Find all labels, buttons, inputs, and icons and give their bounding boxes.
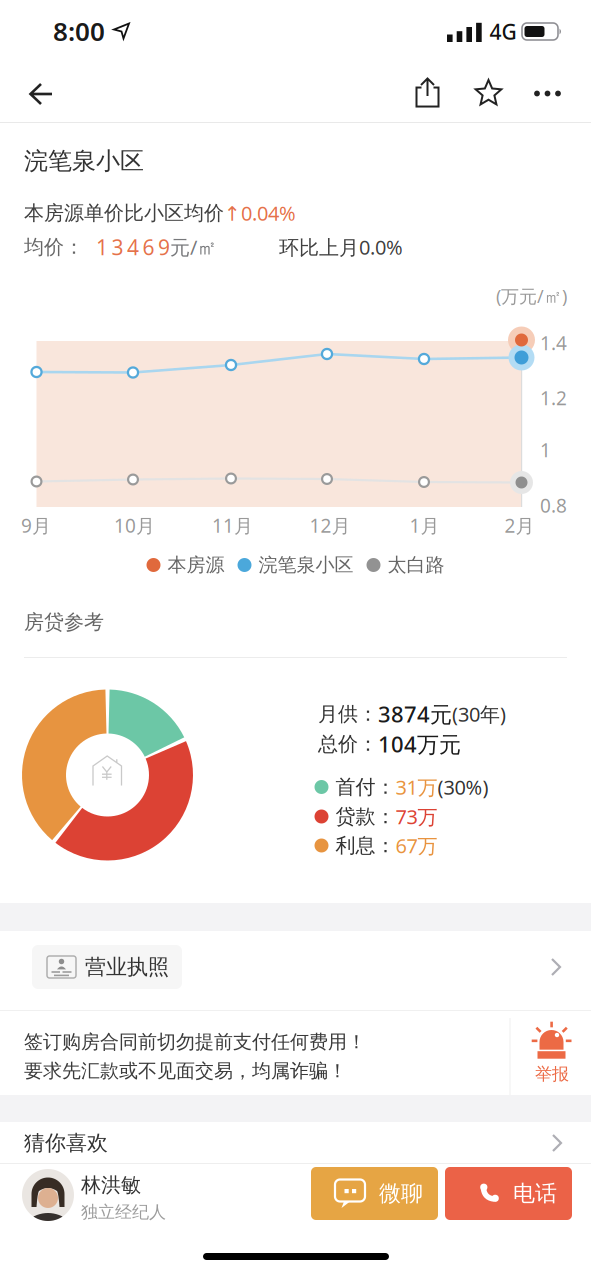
staticText: 1.2 bbox=[540, 385, 567, 411]
button[interactable]: More bbox=[525, 71, 569, 115]
staticText: (30%) bbox=[437, 774, 488, 800]
button[interactable]: Share bbox=[405, 71, 449, 115]
staticText: 1.4 bbox=[540, 330, 567, 356]
staticText: 6 bbox=[142, 233, 154, 261]
staticText: 房贷参考 bbox=[24, 610, 104, 634]
staticText: 林洪敏 bbox=[81, 1173, 141, 1197]
staticText: ↑0.04% bbox=[224, 200, 296, 226]
staticText: 浣笔泉小区 bbox=[258, 553, 353, 577]
staticText: 均价： bbox=[24, 235, 84, 259]
staticText: 浣笔泉小区 bbox=[24, 146, 144, 176]
button[interactable]: 营业执照 bbox=[0, 935, 591, 999]
staticText: 3874元 bbox=[378, 699, 452, 729]
staticText: 利息： bbox=[335, 833, 395, 858]
staticText: 猜你喜欢 bbox=[24, 1130, 108, 1156]
button[interactable]: 电话 bbox=[445, 1167, 572, 1220]
staticText: 1 bbox=[96, 233, 108, 261]
staticText: 签订购房合同前切勿提前支付任何费用！ bbox=[24, 1030, 366, 1054]
staticText: 8:00 bbox=[53, 14, 105, 48]
staticText: 太白路 bbox=[387, 553, 444, 577]
button[interactable]: Favorite bbox=[466, 71, 510, 115]
staticText: 9月 bbox=[21, 513, 51, 538]
staticText: 9 bbox=[158, 233, 170, 261]
staticText: 12月 bbox=[309, 513, 350, 538]
button[interactable]: Back bbox=[19, 72, 63, 116]
staticText: 2月 bbox=[504, 513, 534, 538]
staticText: (万元/㎡) bbox=[496, 284, 567, 308]
staticText: 元/㎡ bbox=[170, 234, 217, 260]
staticText: 4G bbox=[489, 18, 516, 45]
staticText: 73万 bbox=[395, 803, 437, 830]
staticText: 67万 bbox=[395, 832, 437, 859]
staticText: 1 bbox=[540, 437, 551, 463]
staticText: 3 bbox=[111, 233, 123, 261]
staticText: 独立经纪人 bbox=[81, 1202, 166, 1222]
staticText: 电话 bbox=[513, 1180, 557, 1207]
staticText: 4 bbox=[127, 233, 139, 261]
staticText: 1月 bbox=[409, 513, 439, 538]
staticText: 总价： bbox=[318, 732, 378, 756]
staticText: 10月 bbox=[114, 513, 155, 538]
staticText: 月供： bbox=[318, 702, 378, 726]
staticText: 0.8 bbox=[540, 493, 567, 518]
staticText: 微聊 bbox=[379, 1180, 423, 1207]
button[interactable]: 举报 bbox=[521, 1011, 581, 1085]
staticText: 首付： bbox=[335, 775, 395, 799]
staticText: 本房源单价比小区均价 bbox=[24, 201, 224, 225]
staticText: 环比上月0.0% bbox=[279, 234, 403, 260]
button[interactable]: 微聊 bbox=[311, 1167, 438, 1220]
staticText: 贷款： bbox=[335, 804, 395, 829]
staticText: (30年) bbox=[452, 701, 506, 727]
staticText: 11月 bbox=[212, 513, 253, 538]
staticText: 举报 bbox=[535, 1064, 569, 1084]
button[interactable]: 猜你喜欢 bbox=[0, 1122, 591, 1163]
staticText: 营业执照 bbox=[85, 954, 169, 980]
staticText: 本房源 bbox=[167, 553, 224, 577]
staticText: 104万元 bbox=[378, 729, 461, 759]
staticText: 要求先汇款或不见面交易，均属诈骗！ bbox=[24, 1059, 347, 1083]
staticText: 31万 bbox=[395, 774, 437, 800]
